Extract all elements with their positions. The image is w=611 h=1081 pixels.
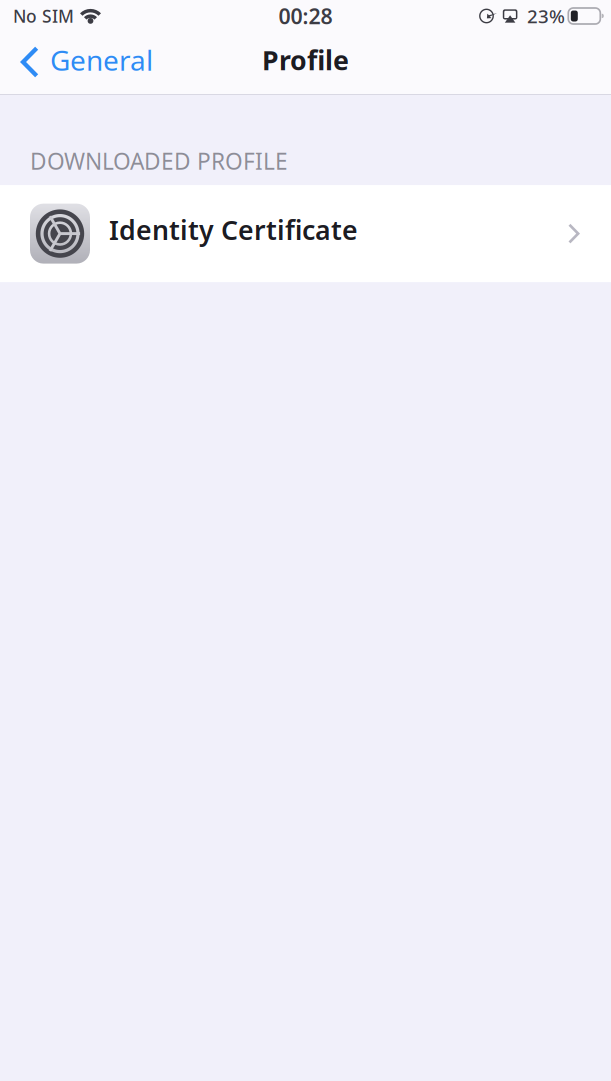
staticText: Profile	[262, 42, 349, 78]
staticText: General	[50, 41, 153, 79]
button[interactable]: Identity Certificate	[0, 185, 611, 282]
staticText: 23%	[527, 4, 565, 28]
staticText: 00:28	[278, 2, 332, 30]
staticText: Identity Certificate	[109, 212, 358, 247]
staticText: No SIM	[13, 4, 74, 27]
button[interactable]: General	[0, 32, 167, 94]
staticText: DOWNLOADED PROFILE	[30, 146, 288, 176]
